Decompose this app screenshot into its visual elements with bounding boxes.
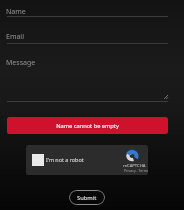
staticText: Message — [6, 58, 36, 68]
staticText: Email — [6, 32, 24, 42]
staticText: I'm not a robot — [46, 156, 84, 163]
button[interactable]: Submit — [69, 190, 105, 205]
staticText: Name — [6, 7, 26, 17]
staticText: Submit — [77, 194, 97, 202]
button[interactable]: I'm not a robot — [26, 145, 148, 175]
staticText: Privacy - Terms — [124, 168, 148, 173]
button[interactable]: Name cannot be empty — [7, 117, 168, 134]
staticText: Name cannot be empty — [56, 122, 119, 130]
staticText: reCAPTCHA — [123, 163, 146, 169]
